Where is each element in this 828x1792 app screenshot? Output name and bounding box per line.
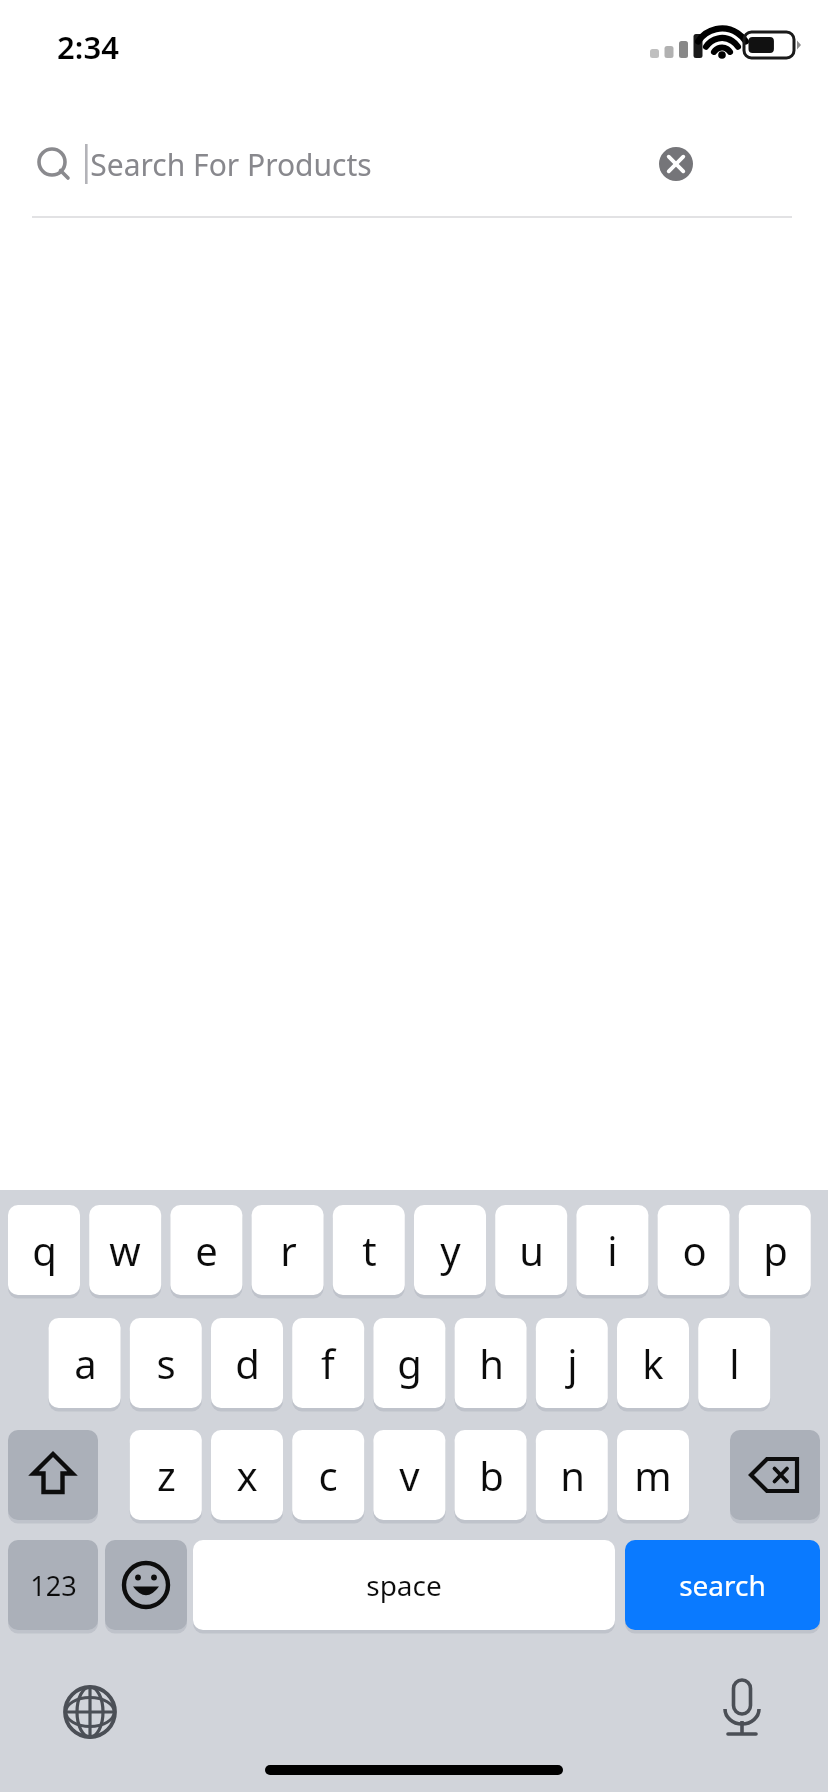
button[interactable]: Change keyboard: [50, 1672, 130, 1752]
button[interactable]: j: [536, 1318, 608, 1408]
staticText: u: [519, 1223, 544, 1277]
staticText: j: [567, 1336, 578, 1390]
button[interactable]: i: [576, 1205, 648, 1295]
button[interactable]: n: [536, 1430, 608, 1520]
button[interactable]: v: [373, 1430, 445, 1520]
staticText: Search For Products: [90, 144, 372, 185]
staticText: g: [397, 1336, 422, 1390]
button[interactable]: w: [89, 1205, 161, 1295]
staticText: a: [74, 1336, 97, 1390]
staticText: d: [235, 1336, 260, 1390]
staticText: k: [642, 1336, 664, 1390]
button[interactable]: 123: [8, 1540, 98, 1630]
button[interactable]: q: [8, 1205, 80, 1295]
button[interactable]: g: [373, 1318, 445, 1408]
staticText: e: [195, 1223, 218, 1277]
staticText: t: [362, 1223, 377, 1277]
staticText: c: [318, 1448, 338, 1502]
staticText: m: [634, 1448, 672, 1502]
button[interactable]: m: [617, 1430, 689, 1520]
staticText: w: [109, 1223, 141, 1277]
staticText: x: [236, 1448, 258, 1502]
staticText: n: [560, 1448, 585, 1502]
staticText: i: [607, 1223, 618, 1277]
button[interactable]: search: [625, 1540, 820, 1630]
staticText: r: [280, 1223, 297, 1277]
button[interactable]: k: [617, 1318, 689, 1408]
staticText: 2:34: [57, 26, 119, 68]
staticText: 123: [30, 1567, 77, 1604]
button[interactable]: Shift: [8, 1430, 98, 1520]
staticText: q: [32, 1223, 57, 1277]
staticText: h: [479, 1336, 504, 1390]
button[interactable]: t: [333, 1205, 405, 1295]
button[interactable]: o: [658, 1205, 730, 1295]
staticText: z: [157, 1448, 176, 1502]
button[interactable]: r: [252, 1205, 324, 1295]
staticText: b: [479, 1448, 504, 1502]
button[interactable]: space: [193, 1540, 615, 1630]
button[interactable]: s: [130, 1318, 202, 1408]
button[interactable]: h: [455, 1318, 527, 1408]
button[interactable]: a: [49, 1318, 121, 1408]
staticText: search: [679, 1566, 766, 1604]
button[interactable]: Emoji: [105, 1540, 187, 1630]
button[interactable]: x: [211, 1430, 283, 1520]
staticText: y: [440, 1223, 461, 1277]
button[interactable]: e: [170, 1205, 242, 1295]
button[interactable]: b: [455, 1430, 527, 1520]
button[interactable]: u: [495, 1205, 567, 1295]
button[interactable]: Backspace: [730, 1430, 820, 1520]
button[interactable]: Dictation: [702, 1672, 782, 1752]
button[interactable]: c: [292, 1430, 364, 1520]
button[interactable]: d: [211, 1318, 283, 1408]
staticText: p: [763, 1223, 788, 1277]
staticText: v: [399, 1448, 420, 1502]
button[interactable]: p: [739, 1205, 811, 1295]
button[interactable]: y: [414, 1205, 486, 1295]
button[interactable]: Search For Products: [0, 118, 828, 212]
staticText: l: [729, 1336, 740, 1390]
staticText: s: [156, 1336, 176, 1390]
button[interactable]: l: [698, 1318, 770, 1408]
staticText: f: [321, 1336, 335, 1390]
button[interactable]: z: [130, 1430, 202, 1520]
staticText: o: [682, 1223, 707, 1277]
button[interactable]: f: [292, 1318, 364, 1408]
staticText: space: [366, 1566, 442, 1604]
